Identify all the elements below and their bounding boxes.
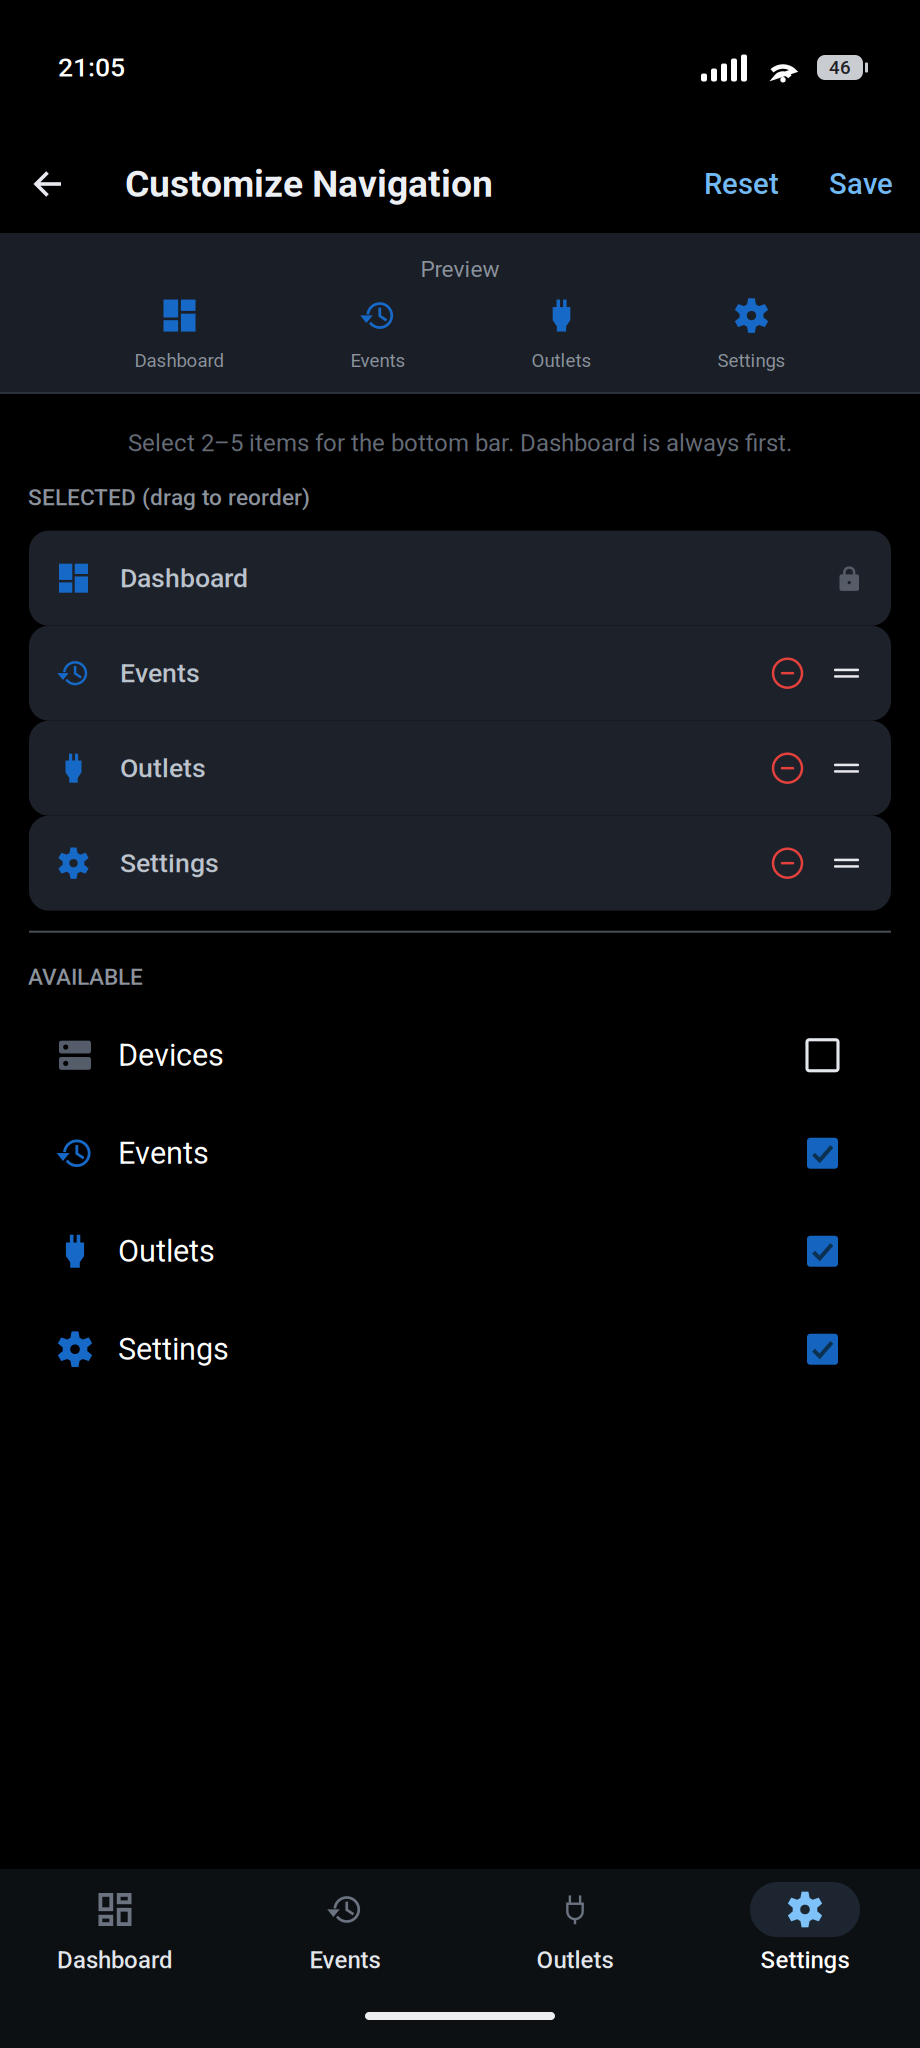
staticText: Dashboard (134, 350, 224, 371)
button[interactable]: Remove Events (773, 659, 802, 688)
button[interactable]: Events (230, 1882, 460, 1974)
staticText: SELECTED (drag to reorder) (28, 484, 310, 511)
staticText: Outlets (536, 1946, 613, 1974)
button[interactable]: Remove Settings (773, 849, 802, 878)
button[interactable]: Dashboard (0, 1882, 230, 1974)
button[interactable]: Devices (0, 1006, 920, 1104)
staticText: Reset (704, 167, 779, 201)
button[interactable]: Save (804, 135, 920, 233)
staticText: Events (309, 1946, 380, 1974)
button[interactable]: Outlets (460, 1882, 690, 1974)
staticText: 46 (829, 57, 851, 78)
staticText: Dashboard (120, 563, 248, 594)
button[interactable]: Settings (0, 1300, 920, 1398)
staticText: Customize Navigation (125, 162, 493, 206)
staticText: Preview (420, 256, 499, 283)
staticText: Outlets (118, 1233, 215, 1269)
staticText: Events (350, 350, 405, 371)
staticText: Events (118, 1135, 209, 1171)
staticText: Settings (760, 1946, 849, 1974)
staticText: Events (120, 658, 200, 689)
button[interactable]: Settings (690, 1882, 920, 1974)
staticText: Settings (120, 848, 219, 879)
staticText: Devices (118, 1037, 224, 1073)
button[interactable]: Reset (679, 135, 804, 233)
staticText: Settings (118, 1331, 229, 1367)
staticText: Select 2–5 items for the bottom bar. Das… (128, 429, 792, 457)
button[interactable]: Back (0, 135, 125, 233)
staticText: Outlets (120, 753, 206, 784)
button[interactable]: Events (0, 1104, 920, 1202)
staticText: Dashboard (57, 1946, 173, 1974)
staticText: Outlets (531, 350, 591, 371)
button[interactable]: Outlets (0, 1202, 920, 1300)
button[interactable]: Remove Outlets (773, 754, 802, 783)
staticText: 21:05 (58, 52, 125, 83)
staticText: Settings (717, 350, 785, 371)
staticText: AVAILABLE (28, 964, 143, 990)
staticText: Save (829, 167, 893, 201)
